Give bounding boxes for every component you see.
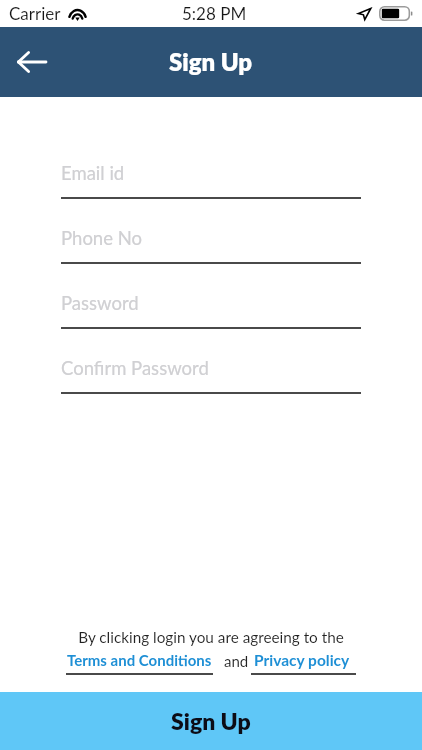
staticText: By clicking login you are agreeing to th… — [78, 628, 344, 646]
staticText: 5:28 PM — [182, 3, 247, 23]
staticText: Sign Up — [171, 707, 251, 735]
button[interactable]: Email id — [61, 149, 361, 199]
button[interactable]: Sign Up — [0, 692, 422, 750]
staticText: and — [224, 652, 249, 670]
staticText: Privacy policy — [254, 651, 350, 670]
button[interactable]: Terms and Conditions — [66, 651, 213, 675]
staticText: Terms and Conditions — [67, 651, 212, 669]
button[interactable]: Back — [0, 27, 62, 97]
button[interactable]: Password — [61, 279, 361, 329]
button[interactable]: Confirm Password — [61, 344, 361, 394]
staticText: Sign Up — [169, 47, 253, 76]
staticText: Email id — [61, 162, 125, 184]
button[interactable]: Privacy policy — [251, 651, 356, 675]
staticText: Phone No — [61, 227, 143, 249]
staticText: Confirm Password — [61, 357, 209, 379]
staticText: Carrier — [9, 3, 61, 23]
staticText: Password — [61, 292, 139, 314]
button[interactable]: Phone No — [61, 214, 361, 264]
